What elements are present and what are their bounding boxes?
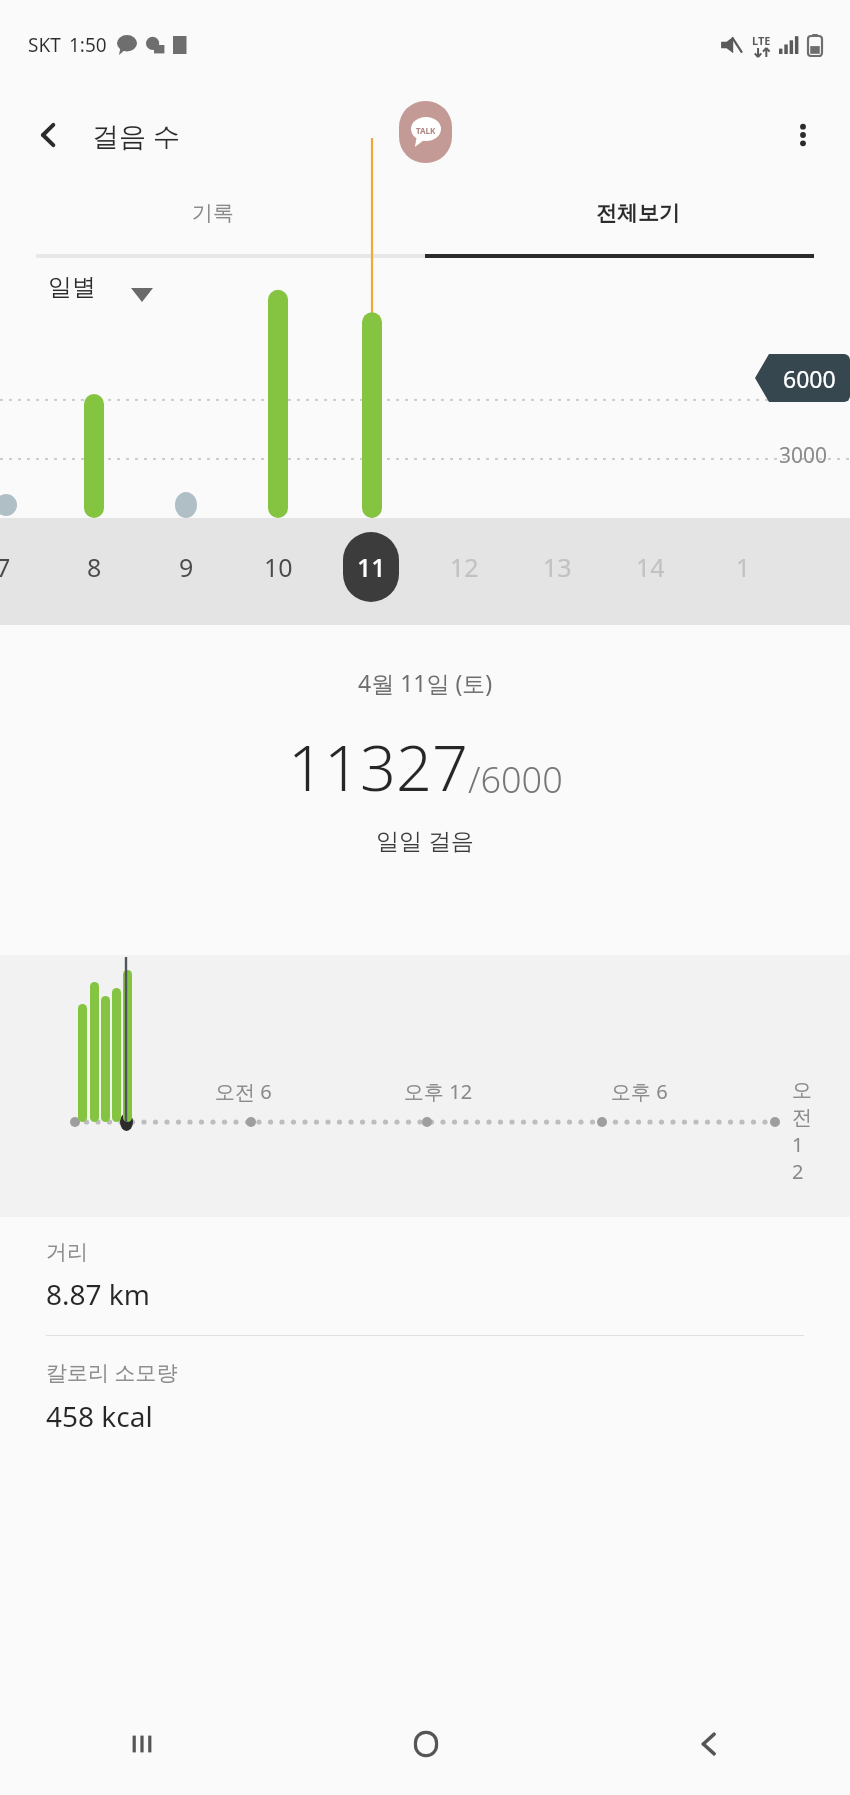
staticText: 10 [264, 550, 293, 584]
button[interactable]: 7 [0, 531, 33, 603]
staticText: 1 [736, 550, 751, 584]
staticText: 458 kcal [46, 1397, 153, 1435]
staticText: SKT [28, 32, 61, 58]
staticText: 8.87 km [46, 1275, 150, 1313]
staticText: 걸음 수 [92, 117, 181, 154]
staticText: 전체보기 [596, 200, 680, 226]
staticText: LTE [752, 33, 771, 48]
staticText: 4월 11일 (토) [358, 667, 493, 698]
staticText: 일별 [48, 272, 96, 302]
button[interactable]: 8 [64, 531, 124, 603]
staticText: 1:50 [69, 32, 107, 58]
staticText: 14 [636, 550, 665, 584]
staticText: 13 [543, 550, 572, 584]
staticText: 11327 [288, 724, 468, 810]
button[interactable]: 전체보기 [425, 180, 850, 258]
button[interactable]: Home [284, 1693, 567, 1795]
staticText: 기록 [192, 200, 234, 226]
staticText: 오전 12 [792, 1078, 800, 1185]
button[interactable]: 칼로리 소모량 [0, 1336, 850, 1457]
staticText: 8 [87, 550, 102, 584]
staticText: 일일 걸음 [376, 824, 474, 855]
staticText: 거리 [46, 1239, 88, 1265]
button[interactable]: 14 [620, 531, 680, 603]
staticText: 6000 [783, 363, 836, 394]
staticText: 오후 12 [404, 1078, 473, 1105]
staticText: 9 [179, 550, 194, 584]
button[interactable]: 기록 [0, 180, 425, 258]
button[interactable]: 거리 [0, 1217, 850, 1336]
staticText: 오후 6 [611, 1078, 668, 1105]
button[interactable]: 13 [527, 531, 587, 603]
button[interactable]: 1 [713, 531, 773, 603]
button[interactable]: KakaoTalk [399, 101, 452, 163]
staticText: 12 [450, 550, 479, 584]
staticText: 11 [357, 550, 386, 584]
staticText: /6000 [468, 755, 563, 804]
button[interactable]: 12 [434, 531, 494, 603]
staticText: 오전 6 [215, 1078, 272, 1105]
staticText: 3000 [779, 441, 828, 470]
button[interactable]: 9 [156, 531, 216, 603]
button[interactable]: Back [567, 1693, 850, 1795]
button[interactable]: 11 [341, 531, 401, 603]
button[interactable]: More options [776, 108, 830, 162]
button[interactable]: Recents [0, 1693, 284, 1795]
staticText: 칼로리 소모량 [46, 1358, 178, 1387]
staticText: TALK [416, 125, 436, 136]
button[interactable]: Back [22, 108, 76, 162]
staticText: 7 [0, 550, 11, 584]
button[interactable]: 10 [248, 531, 308, 603]
